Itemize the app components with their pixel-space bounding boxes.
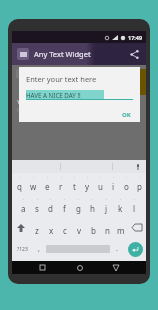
staticText: q: [17, 181, 22, 192]
staticText: a: [21, 203, 26, 214]
button[interactable]: ': [120, 173, 133, 195]
staticText: HAVE A NICE DAY !!: [26, 91, 81, 99]
staticText: ': [113, 176, 114, 181]
button[interactable]: ': [94, 173, 107, 195]
staticText: h: [90, 203, 95, 214]
button[interactable]: Home: [73, 261, 86, 274]
button[interactable]: Enter: [128, 242, 143, 257]
staticText: t: [73, 181, 76, 192]
button[interactable]: ': [43, 195, 57, 217]
staticText: ': [19, 176, 20, 181]
staticText: f: [63, 203, 66, 214]
button[interactable]: b: [86, 217, 100, 238]
button[interactable]: ': [57, 195, 71, 217]
button[interactable]: Shift: [12, 217, 30, 238]
staticText: ': [106, 198, 107, 203]
button[interactable]: ': [99, 195, 113, 217]
staticText: ': [50, 198, 51, 203]
staticText: ,: [38, 244, 40, 254]
button[interactable]: ': [81, 173, 94, 195]
button[interactable]: Share: [127, 47, 141, 61]
button[interactable]: Recents: [36, 261, 49, 274]
staticText: ': [64, 198, 65, 203]
button[interactable]: ': [68, 173, 81, 195]
staticText: ': [74, 176, 75, 181]
staticText: ': [126, 176, 127, 181]
button[interactable]: ': [85, 195, 99, 217]
button[interactable]: ': [30, 195, 43, 217]
button[interactable]: x: [44, 217, 58, 238]
button[interactable]: m: [114, 217, 128, 238]
button[interactable]: ,: [32, 238, 46, 260]
staticText: ': [78, 198, 79, 203]
staticText: y: [85, 181, 90, 192]
staticText: 17:49: [128, 34, 143, 41]
staticText: m: [117, 225, 125, 236]
staticText: Any Text Widget: [34, 49, 91, 59]
staticText: c: [63, 225, 67, 236]
button[interactable]: ': [12, 173, 26, 195]
staticText: d: [48, 203, 53, 214]
staticText: w: [30, 181, 37, 192]
button[interactable]: OK: [122, 111, 131, 119]
button[interactable]: ': [133, 173, 146, 195]
button[interactable]: ': [127, 195, 141, 217]
staticText: g: [76, 203, 81, 214]
staticText: ': [87, 176, 88, 181]
staticText: ?123: [17, 246, 28, 253]
staticText: .: [116, 244, 118, 254]
staticText: ': [33, 176, 34, 181]
staticText: x: [49, 225, 54, 236]
staticText: ': [23, 198, 24, 203]
staticText: z: [35, 225, 39, 236]
staticText: ': [134, 198, 135, 203]
button[interactable]: ': [113, 195, 127, 217]
button[interactable]: .: [110, 238, 124, 260]
button[interactable]: App icon: [17, 48, 29, 60]
staticText: k: [118, 203, 123, 214]
button[interactable]: ': [26, 173, 40, 195]
staticText: ': [47, 176, 48, 181]
button[interactable]: Backspace: [128, 217, 146, 238]
staticText: HAVE A NICE DAY !!: [17, 107, 62, 114]
staticText: v: [77, 225, 82, 236]
button[interactable]: HAVE A NICE DAY !!: [26, 90, 133, 99]
staticText: j: [105, 203, 108, 214]
button[interactable]: c: [58, 217, 72, 238]
staticText: u: [98, 181, 103, 192]
button[interactable]: ': [17, 195, 30, 217]
staticText: ': [92, 198, 93, 203]
staticText: i: [112, 181, 115, 192]
staticText: Enter your text here: [26, 74, 97, 84]
staticText: l: [133, 203, 136, 214]
button[interactable]: ': [107, 173, 120, 195]
staticText: ': [139, 176, 140, 181]
staticText: ': [120, 198, 121, 203]
staticText: OK: [122, 111, 131, 119]
staticText: s: [35, 203, 39, 214]
staticText: b: [91, 225, 96, 236]
staticText: ': [100, 176, 101, 181]
staticText: o: [124, 181, 129, 192]
button[interactable]: CREATE: [16, 69, 38, 78]
button[interactable]: ?123: [12, 238, 32, 260]
button[interactable]: n: [100, 217, 114, 238]
staticText: ': [37, 198, 38, 203]
button[interactable]: ': [54, 173, 68, 195]
staticText: Your Text: [17, 98, 41, 105]
staticText: n: [105, 225, 110, 236]
button[interactable]: z: [30, 217, 44, 238]
button[interactable]: ': [40, 173, 54, 195]
staticText: ': [61, 176, 62, 181]
staticText: r: [59, 181, 63, 192]
button[interactable]: Back: [109, 261, 122, 274]
staticText: e: [45, 181, 50, 192]
button[interactable]: ': [71, 195, 85, 217]
button[interactable]: v: [72, 217, 86, 238]
staticText: p: [137, 181, 142, 192]
